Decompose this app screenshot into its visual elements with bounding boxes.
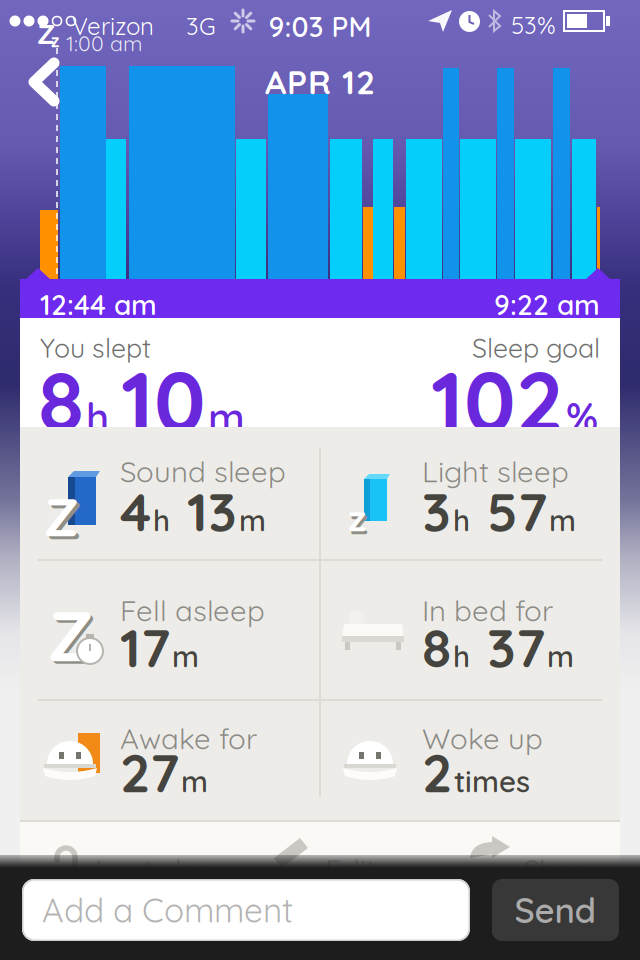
staticText: 3G [186,11,216,41]
staticText: 53% [511,10,556,40]
staticText: Edit [325,851,376,888]
button[interactable]: Add a Comment [22,879,470,941]
staticText: 9:22 am [494,287,600,322]
staticText: Woke up [422,720,543,757]
button[interactable]: Edit [250,820,430,860]
button[interactable]: Share [440,820,620,860]
staticText: m [208,392,245,442]
staticText: m [239,502,266,539]
staticText: Sleep goal [472,331,600,364]
staticText: 17 [120,614,170,681]
staticText: Add a Comment [42,889,293,931]
staticText: z [348,494,366,541]
staticText: 13 [172,478,237,545]
staticText: In bed for [422,592,553,629]
staticText: Z [50,594,95,681]
staticText: times [454,763,530,800]
staticText: 2 [422,739,452,806]
staticText: 9:03 PM [268,9,371,44]
staticText: 3 [422,478,451,545]
staticText: Fell asleep [120,592,265,629]
staticText: Awake for [120,720,257,757]
staticText: z [350,497,368,544]
staticText: Z [37,16,55,51]
staticText: You slept [40,331,151,364]
button[interactable]: Send [492,879,619,941]
staticText: Share [523,851,602,888]
button[interactable]: Lost sleep [40,820,220,860]
staticText: Lost sleep [95,851,233,888]
staticText: m [172,638,199,675]
staticText: Sound sleep [120,453,286,490]
staticText: m [549,502,576,539]
staticText: h [86,392,109,442]
staticText: Send [514,888,596,932]
staticText: Verizon [72,11,154,41]
staticText: Z [48,592,93,679]
staticText: 4 [120,478,151,545]
staticText: m [181,763,208,800]
staticText: h [453,502,470,539]
button[interactable] [0,0,640,960]
staticText: h [153,502,170,539]
staticText: m [547,638,574,675]
staticText: z [51,30,59,52]
staticText: 37 [472,614,545,681]
staticText: 102 [431,348,564,453]
staticText: 8 [38,348,84,453]
staticText: Light sleep [422,453,569,490]
staticText: 27 [120,739,179,806]
staticText: % [566,392,598,442]
staticText: 12:44 am [40,287,157,322]
staticText: 1:00 am [66,30,142,57]
staticText: h [453,638,470,675]
staticText: Z [47,486,82,553]
staticText: Z [44,483,79,550]
staticText: 10 [121,348,206,453]
staticText: APR 12 [265,61,375,103]
staticText: 57 [472,478,547,545]
staticText: 8 [422,614,451,681]
